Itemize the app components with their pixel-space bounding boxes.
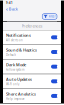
staticText: Sound & Haptics: [6, 47, 37, 53]
button[interactable]: Filter: [42, 14, 57, 19]
button[interactable]: Notifications: [3, 30, 61, 44]
staticText: Share Analytics: [6, 91, 36, 96]
button[interactable]: Share Analytics: [3, 89, 61, 103]
staticText: Back: [9, 6, 18, 12]
button[interactable]: Auto Updates: [3, 74, 61, 88]
staticText: Preferences: [21, 23, 42, 29]
staticText: Default: [6, 53, 16, 57]
staticText: Wi-Fi only: [6, 82, 19, 86]
staticText: 9:41: [6, 1, 13, 5]
staticText: Help improve: [6, 97, 25, 101]
staticText: Follow system: [6, 68, 24, 71]
button[interactable]: Dark Mode: [3, 59, 61, 74]
staticText: Filter: [49, 15, 56, 18]
staticText: Notifications: [6, 33, 31, 38]
button[interactable]: Sound & Haptics: [3, 45, 61, 59]
staticText: All alerts on: [6, 38, 23, 42]
staticText: Auto Updates: [6, 77, 32, 82]
button[interactable]: ‹: [3, 6, 61, 12]
staticText: ‹: [6, 5, 8, 13]
staticText: Dark Mode: [6, 62, 26, 67]
